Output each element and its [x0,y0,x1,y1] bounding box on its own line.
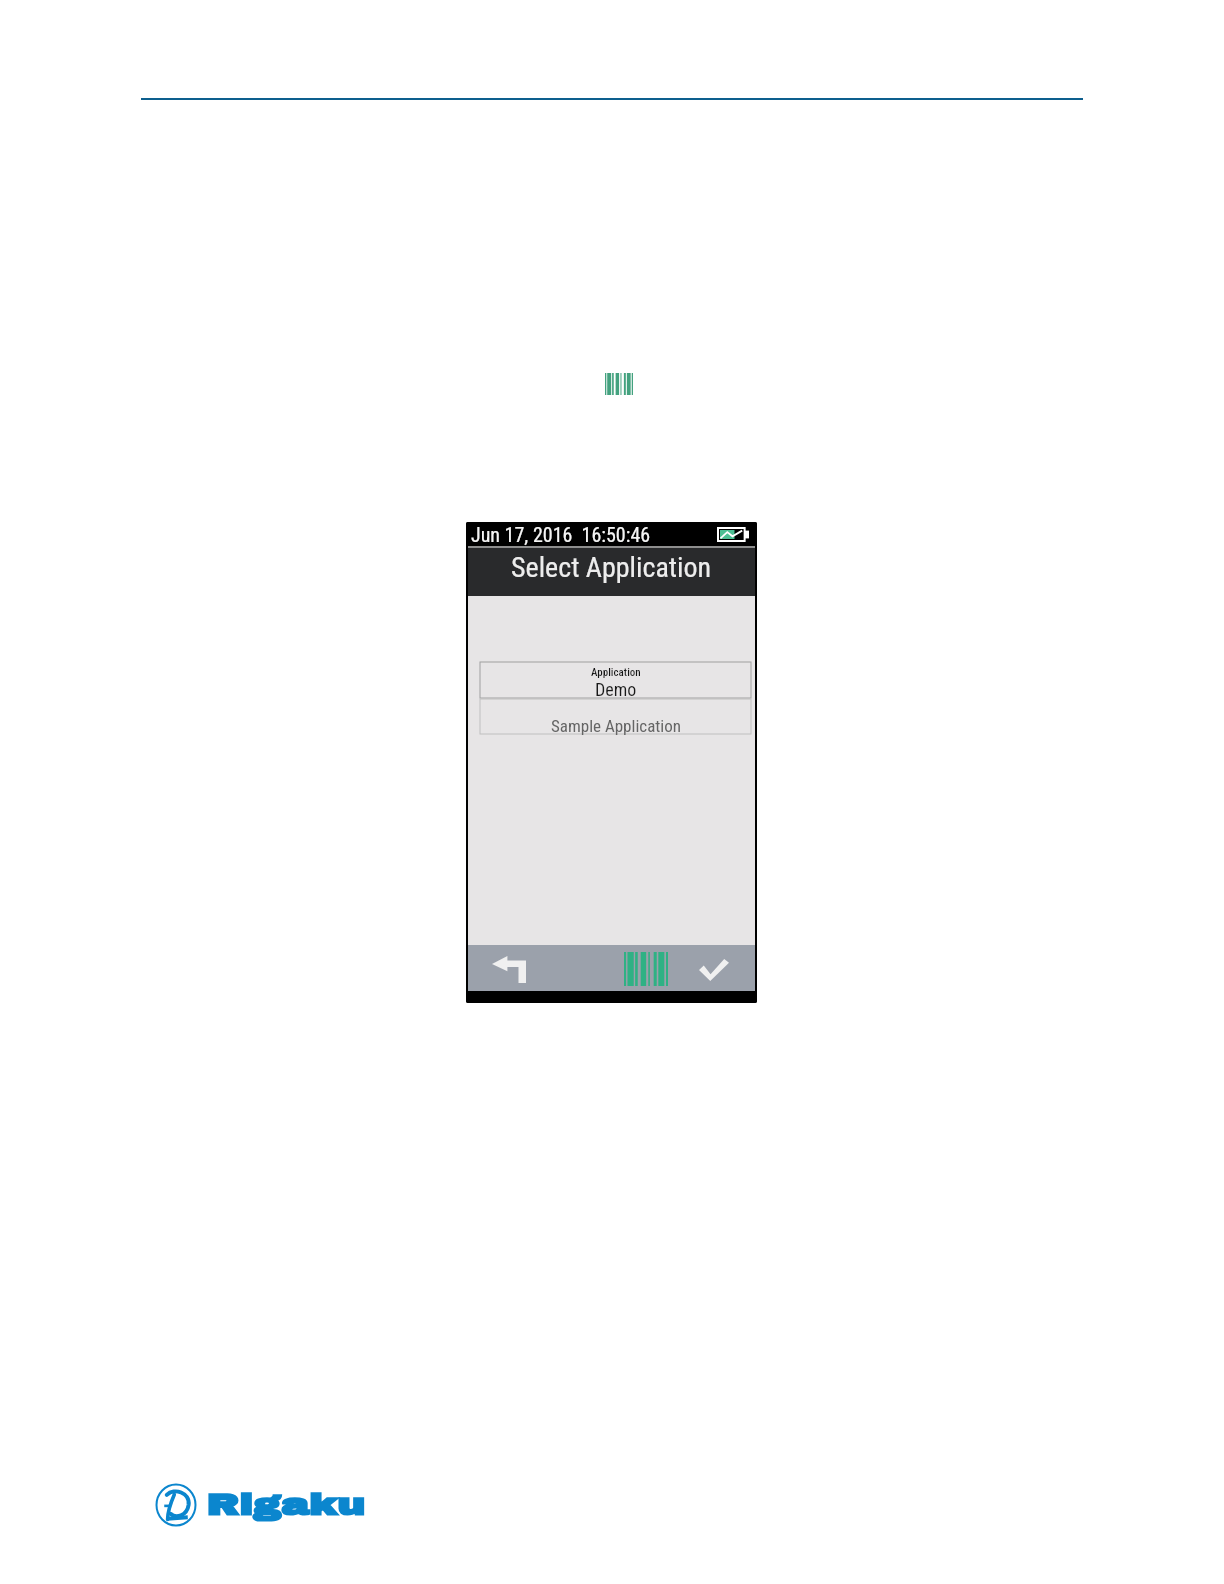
button[interactable]: Scan barcode [600,945,690,991]
staticText: Rigaku [206,1489,366,1522]
staticText: Sample Application [551,716,681,736]
staticText: Jun 17, 2016 16:50:46 [471,523,651,546]
staticText: Application [591,666,641,679]
button[interactable]: Application [480,662,751,698]
staticText: Select Application [511,551,712,584]
button[interactable]: Confirm [680,945,748,991]
staticText: Demo [595,679,637,698]
button[interactable]: Sample Application [480,699,751,734]
button[interactable]: Back [474,945,542,991]
